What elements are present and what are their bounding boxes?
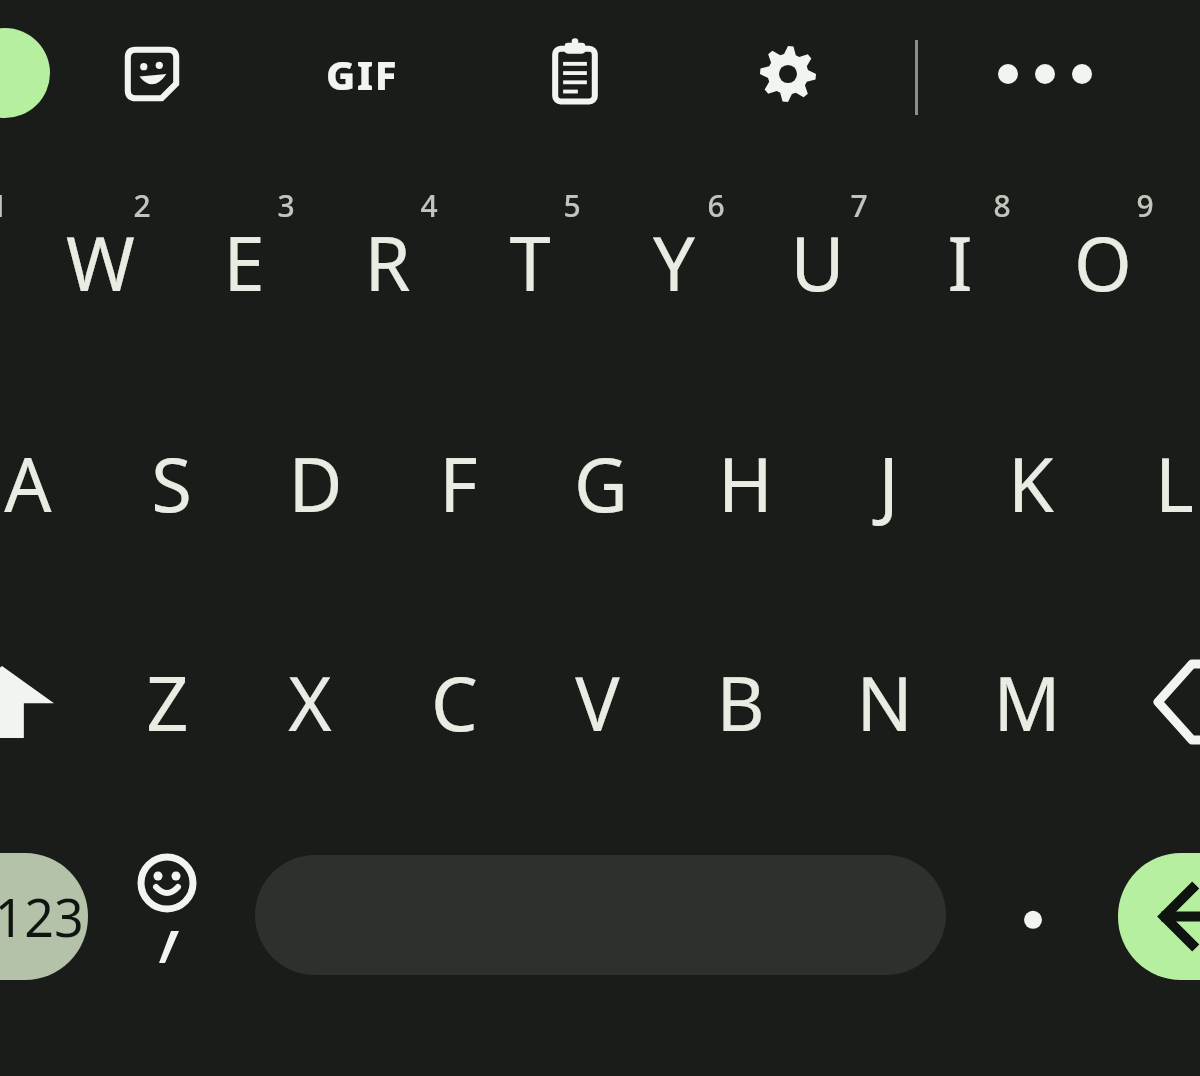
staticText: F <box>439 433 478 534</box>
button[interactable]: X <box>230 642 390 762</box>
button[interactable]: Period <box>963 855 1103 975</box>
button[interactable]: Q <box>0 202 37 322</box>
button[interactable]: More options <box>985 24 1105 124</box>
staticText: 2 <box>133 185 151 226</box>
staticText: 3 <box>277 185 295 226</box>
staticText: X <box>288 652 332 753</box>
staticText: R <box>364 212 411 313</box>
staticText: B <box>716 652 765 753</box>
button[interactable]: M <box>947 642 1107 762</box>
button[interactable]: F <box>378 423 538 543</box>
button[interactable]: Y <box>594 202 754 322</box>
button[interactable]: GIF <box>292 29 432 119</box>
button[interactable]: D <box>235 423 395 543</box>
staticText: J <box>878 433 899 534</box>
button[interactable]: R <box>307 202 467 322</box>
staticText: I <box>947 212 973 313</box>
staticText: 8 <box>993 185 1011 226</box>
button[interactable]: L <box>1094 423 1200 543</box>
staticText: GIF <box>326 47 399 101</box>
button[interactable]: Enter <box>1118 853 1200 980</box>
button[interactable]: U <box>737 202 897 322</box>
staticText: Y <box>653 212 695 313</box>
button[interactable]: B <box>660 642 820 762</box>
button[interactable]: Backspace <box>1140 642 1200 762</box>
button[interactable]: A <box>0 423 108 543</box>
button[interactable]: Space <box>255 855 946 975</box>
staticText: 7 <box>850 185 868 226</box>
button[interactable]: G <box>521 423 681 543</box>
staticText: 4 <box>420 185 438 226</box>
button[interactable]: ?123 <box>0 853 88 980</box>
button[interactable]: C <box>374 642 534 762</box>
staticText: E <box>223 212 265 313</box>
staticText: 6 <box>707 185 725 226</box>
staticText: K <box>1008 433 1054 534</box>
button[interactable]: T <box>450 202 610 322</box>
button[interactable]: S <box>91 423 251 543</box>
staticText: G <box>574 433 628 534</box>
button[interactable]: Shift <box>0 642 62 762</box>
staticText: M <box>993 652 1061 753</box>
staticText: O <box>1074 212 1132 313</box>
button[interactable]: Settings <box>733 19 843 129</box>
button[interactable]: V <box>517 642 677 762</box>
button[interactable]: N <box>804 642 964 762</box>
button[interactable]: I <box>880 202 1040 322</box>
button[interactable]: W <box>20 202 180 322</box>
staticText: S <box>151 433 192 534</box>
button[interactable]: O <box>1023 202 1183 322</box>
staticText: H <box>718 433 773 534</box>
button[interactable]: Z <box>87 642 247 762</box>
staticText: W <box>66 212 135 313</box>
button[interactable]: Emoji and comma <box>97 835 237 995</box>
button[interactable]: K <box>951 423 1111 543</box>
staticText: 9 <box>1136 185 1154 226</box>
staticText: V <box>575 652 620 753</box>
staticText: Z <box>146 652 189 753</box>
staticText: C <box>431 652 478 753</box>
staticText: L <box>1155 433 1194 534</box>
staticText: 1 <box>0 185 8 226</box>
button[interactable]: H <box>665 423 825 543</box>
staticText: ?123 <box>0 881 84 952</box>
button[interactable]: E <box>164 202 324 322</box>
button[interactable]: Stickers <box>97 19 207 129</box>
staticText: 5 <box>563 185 581 226</box>
staticText: A <box>4 433 52 534</box>
button[interactable]: Clipboard <box>520 19 630 129</box>
staticText: T <box>509 212 551 313</box>
button[interactable]: J <box>808 423 968 543</box>
staticText: U <box>790 212 845 313</box>
staticText: D <box>288 433 343 534</box>
staticText: N <box>856 652 913 753</box>
button[interactable]: Voice input <box>0 28 50 118</box>
